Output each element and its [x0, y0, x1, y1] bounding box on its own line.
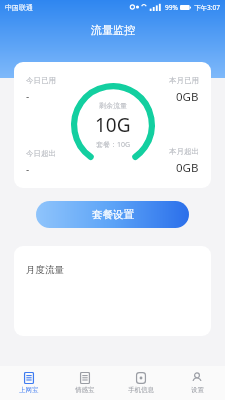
staticText: 本月超出 — [169, 147, 199, 156]
button[interactable]: 上网宝 — [0, 366, 57, 400]
staticText: 流量监控 — [91, 23, 135, 37]
staticText: 设置 — [191, 386, 204, 394]
staticText: 0GB — [176, 89, 199, 105]
button[interactable]: 设置 — [169, 366, 225, 400]
staticText: 手机信息 — [128, 386, 154, 394]
staticText: 情感宝 — [75, 386, 95, 394]
staticText: - — [26, 162, 30, 176]
staticText: 0GB — [176, 160, 199, 176]
staticText: 今日超出 — [26, 149, 56, 158]
staticText: 上网宝 — [19, 386, 39, 394]
staticText: 中国联通 — [5, 3, 33, 12]
staticText: 本月已用 — [169, 76, 199, 85]
staticText: 99% — [165, 3, 178, 12]
button[interactable]: 情感宝 — [57, 366, 113, 400]
staticText: 套餐：10G — [96, 140, 131, 150]
staticText: 剩余流量 — [99, 101, 127, 110]
staticText: 套餐设置 — [92, 208, 134, 221]
staticText: - — [26, 89, 30, 103]
button[interactable]: 手机信息 — [113, 366, 169, 400]
staticText: 月度流量 — [26, 264, 64, 276]
button[interactable]: 套餐设置 — [36, 201, 189, 228]
staticText: 下午3:07 — [194, 3, 220, 12]
staticText: 今日已用 — [26, 76, 56, 85]
staticText: 10G — [95, 112, 131, 138]
